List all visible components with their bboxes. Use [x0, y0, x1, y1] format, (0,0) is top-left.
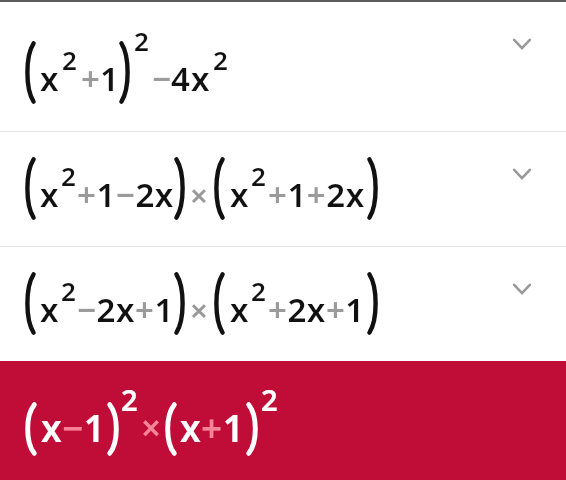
button[interactable]: x: [0, 132, 566, 246]
staticText: ×: [190, 288, 208, 331]
staticText: 2: [61, 158, 76, 193]
staticText: −4: [152, 56, 190, 101]
staticText: x: [40, 287, 60, 332]
staticText: x: [40, 172, 60, 217]
staticText: 2: [121, 380, 138, 420]
staticText: 2: [251, 158, 266, 193]
staticText: 2: [261, 380, 278, 420]
staticText: x: [230, 172, 250, 217]
staticText: −2x+1: [77, 287, 174, 332]
button[interactable]: Expand step: [505, 274, 539, 304]
staticText: ×: [141, 403, 162, 451]
button[interactable]: x−1: [0, 361, 566, 480]
button[interactable]: x: [0, 247, 566, 361]
staticText: 2: [251, 273, 266, 308]
staticText: x−1: [41, 402, 106, 452]
staticText: +1: [81, 56, 119, 101]
staticText: x+1: [180, 402, 245, 452]
staticText: x: [40, 56, 59, 101]
staticText: +2x+1: [268, 287, 365, 332]
button[interactable]: Expand step: [505, 159, 539, 189]
staticText: +1+2x: [268, 172, 365, 217]
staticText: x: [191, 56, 210, 101]
staticText: 2: [62, 42, 77, 77]
staticText: 2: [134, 23, 149, 58]
staticText: 2: [61, 273, 76, 308]
button[interactable]: Expand step: [505, 29, 539, 59]
staticText: 2: [213, 42, 228, 77]
staticText: ×: [190, 173, 208, 216]
button[interactable]: x: [0, 2, 566, 131]
staticText: x: [230, 287, 250, 332]
staticText: +1−2x: [77, 172, 174, 217]
